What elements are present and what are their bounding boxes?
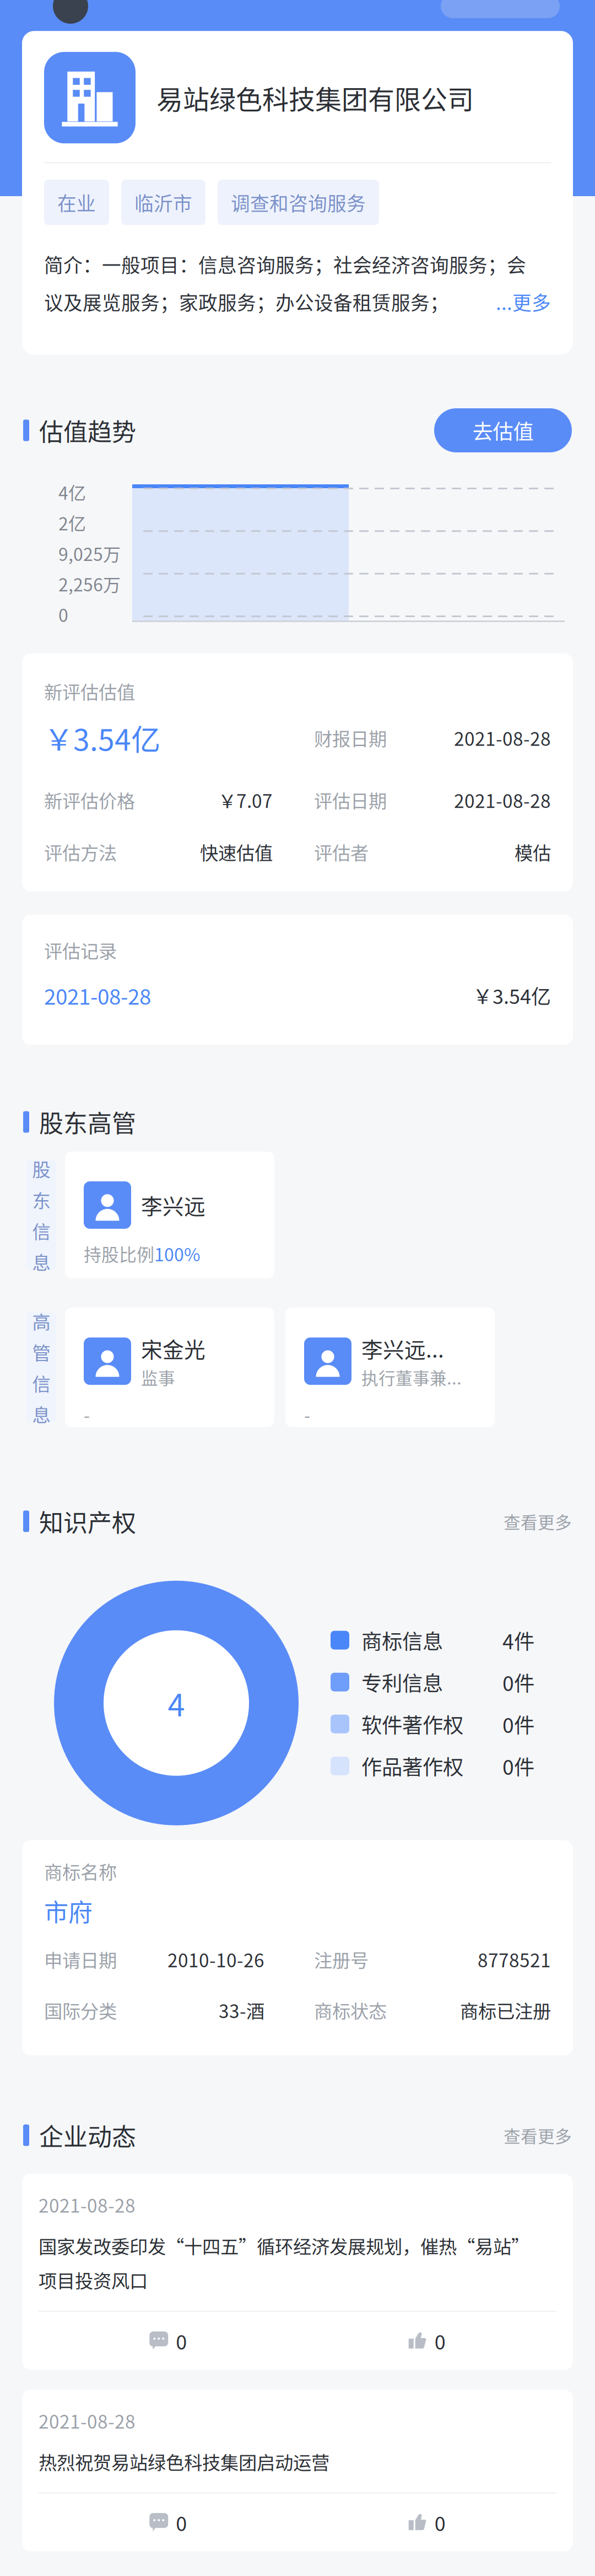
button[interactable]: 0 <box>149 2326 187 2355</box>
staticText: 息 <box>32 1401 50 1427</box>
staticText: 2,256万 <box>58 571 121 596</box>
staticText: 2021-08-28 <box>44 980 151 1011</box>
staticText: 2021-08-28 <box>39 2191 136 2218</box>
staticText: 财报日期 <box>314 724 387 751</box>
staticText: 商标状态 <box>314 1997 387 2023</box>
staticText: 项目投资风口 <box>39 2267 148 2293</box>
staticText: 商标已注册 <box>460 1997 551 2023</box>
staticText: 0 <box>176 2326 187 2355</box>
staticText: 市府 <box>44 1893 93 1928</box>
staticText: 快速估值 <box>200 839 273 865</box>
staticText: 2亿 <box>58 510 86 535</box>
staticText: 注册号 <box>314 1946 369 1973</box>
staticText: 0 <box>58 602 68 627</box>
staticText: 新评估估值 <box>44 678 135 704</box>
staticText: 评估日期 <box>314 787 387 813</box>
button[interactable]: 0 <box>409 2326 446 2355</box>
button[interactable]: 宋金光 <box>65 1308 274 1427</box>
staticText: 2021-08-28 <box>39 2407 136 2434</box>
staticText: 临沂市 <box>134 189 192 216</box>
button[interactable]: 查看更多 <box>504 2123 572 2147</box>
staticText: 信 <box>32 1370 50 1396</box>
staticText: ￥3.54亿 <box>44 716 160 759</box>
staticText: 0 <box>176 2508 187 2537</box>
staticText: 股东高管 <box>39 1104 136 1140</box>
staticText: 调查和咨询服务 <box>231 189 366 216</box>
staticText: 0件 <box>502 1751 534 1781</box>
staticText: 宋金光 <box>141 1333 205 1364</box>
staticText: 李兴远 <box>141 1190 205 1221</box>
staticText: 估值趋势 <box>39 413 136 448</box>
staticText: - <box>304 1402 310 1427</box>
staticText: 2021-08-28 <box>454 787 551 813</box>
staticText: ￥7.07 <box>218 787 273 813</box>
staticText: 易站绿色科技集团有限公司 <box>156 79 474 117</box>
staticText: 在业 <box>57 189 96 216</box>
button[interactable]: ...更多 <box>496 288 551 316</box>
staticText: 商标信息 <box>361 1625 443 1655</box>
staticText: 高 <box>32 1308 50 1334</box>
staticText: 李兴远... <box>361 1333 444 1364</box>
staticText: 2021-08-28 <box>454 724 551 751</box>
staticText: ...更多 <box>496 288 551 316</box>
staticText: 评估记录 <box>44 937 117 963</box>
staticText: 模估 <box>515 839 551 865</box>
staticText: 监事 <box>141 1365 175 1389</box>
staticText: 查看更多 <box>504 1509 572 1533</box>
staticText: 申请日期 <box>44 1946 117 1973</box>
staticText: 东 <box>32 1186 50 1213</box>
staticText: 企业动态 <box>39 2118 136 2153</box>
staticText: 100% <box>154 1241 200 1266</box>
staticText: 4 <box>168 1681 185 1725</box>
staticText: 执行董事兼... <box>361 1365 462 1389</box>
staticText: 管 <box>32 1339 50 1365</box>
staticText: 4件 <box>502 1625 534 1655</box>
staticText: 股 <box>32 1155 50 1182</box>
staticText: 33-酒 <box>219 1997 264 2023</box>
staticText: 0件 <box>502 1709 534 1739</box>
staticText: 简介：一般项目：信息咨询服务；社会经济咨询服务；会 <box>44 250 526 278</box>
staticText: 评估者 <box>314 839 369 865</box>
staticText: 新评估价格 <box>44 787 135 813</box>
staticText: 8778521 <box>478 1946 551 1973</box>
staticText: 2010-10-26 <box>167 1946 264 1973</box>
button[interactable]: 查看更多 <box>504 1509 572 1533</box>
staticText: ￥3.54亿 <box>473 981 551 1010</box>
button[interactable]: 0 <box>149 2508 187 2537</box>
button[interactable]: 李兴远... <box>285 1308 495 1427</box>
button[interactable]: 李兴远 <box>65 1152 274 1278</box>
button[interactable]: Back <box>0 0 88 24</box>
staticText: 知识产权 <box>39 1504 136 1539</box>
button[interactable]: 2021-08-28 <box>44 980 551 1011</box>
staticText: 去估值 <box>472 415 534 445</box>
button[interactable]: 去估值 <box>434 408 572 452</box>
button[interactable]: 0 <box>409 2508 446 2537</box>
staticText: 国际分类 <box>44 1997 117 2023</box>
staticText: 作品著作权 <box>361 1751 463 1781</box>
staticText: 查看更多 <box>504 2123 572 2147</box>
staticText: 议及展览服务；家政服务；办公设备租赁服务； <box>44 288 449 316</box>
staticText: 0件 <box>502 1667 534 1697</box>
staticText: 评估方法 <box>44 839 117 865</box>
staticText: 4亿 <box>58 479 86 505</box>
staticText: 专利信息 <box>361 1667 443 1697</box>
staticText: 9,025万 <box>58 540 121 566</box>
staticText: 息 <box>32 1248 50 1275</box>
staticText: 国家发改委印发“十四五”循环经济发展规划，催热“易站” <box>39 2232 529 2259</box>
staticText: 0 <box>435 2326 446 2355</box>
staticText: - <box>84 1402 90 1427</box>
staticText: 热烈祝贺易站绿色科技集团启动运营 <box>39 2448 329 2475</box>
staticText: 软件著作权 <box>361 1709 463 1739</box>
staticText: 信 <box>32 1217 50 1244</box>
staticText: 持股比例 <box>84 1241 154 1266</box>
staticText: 商标名称 <box>44 1858 117 1884</box>
staticText: 0 <box>435 2508 446 2537</box>
button[interactable]: More <box>441 0 595 18</box>
